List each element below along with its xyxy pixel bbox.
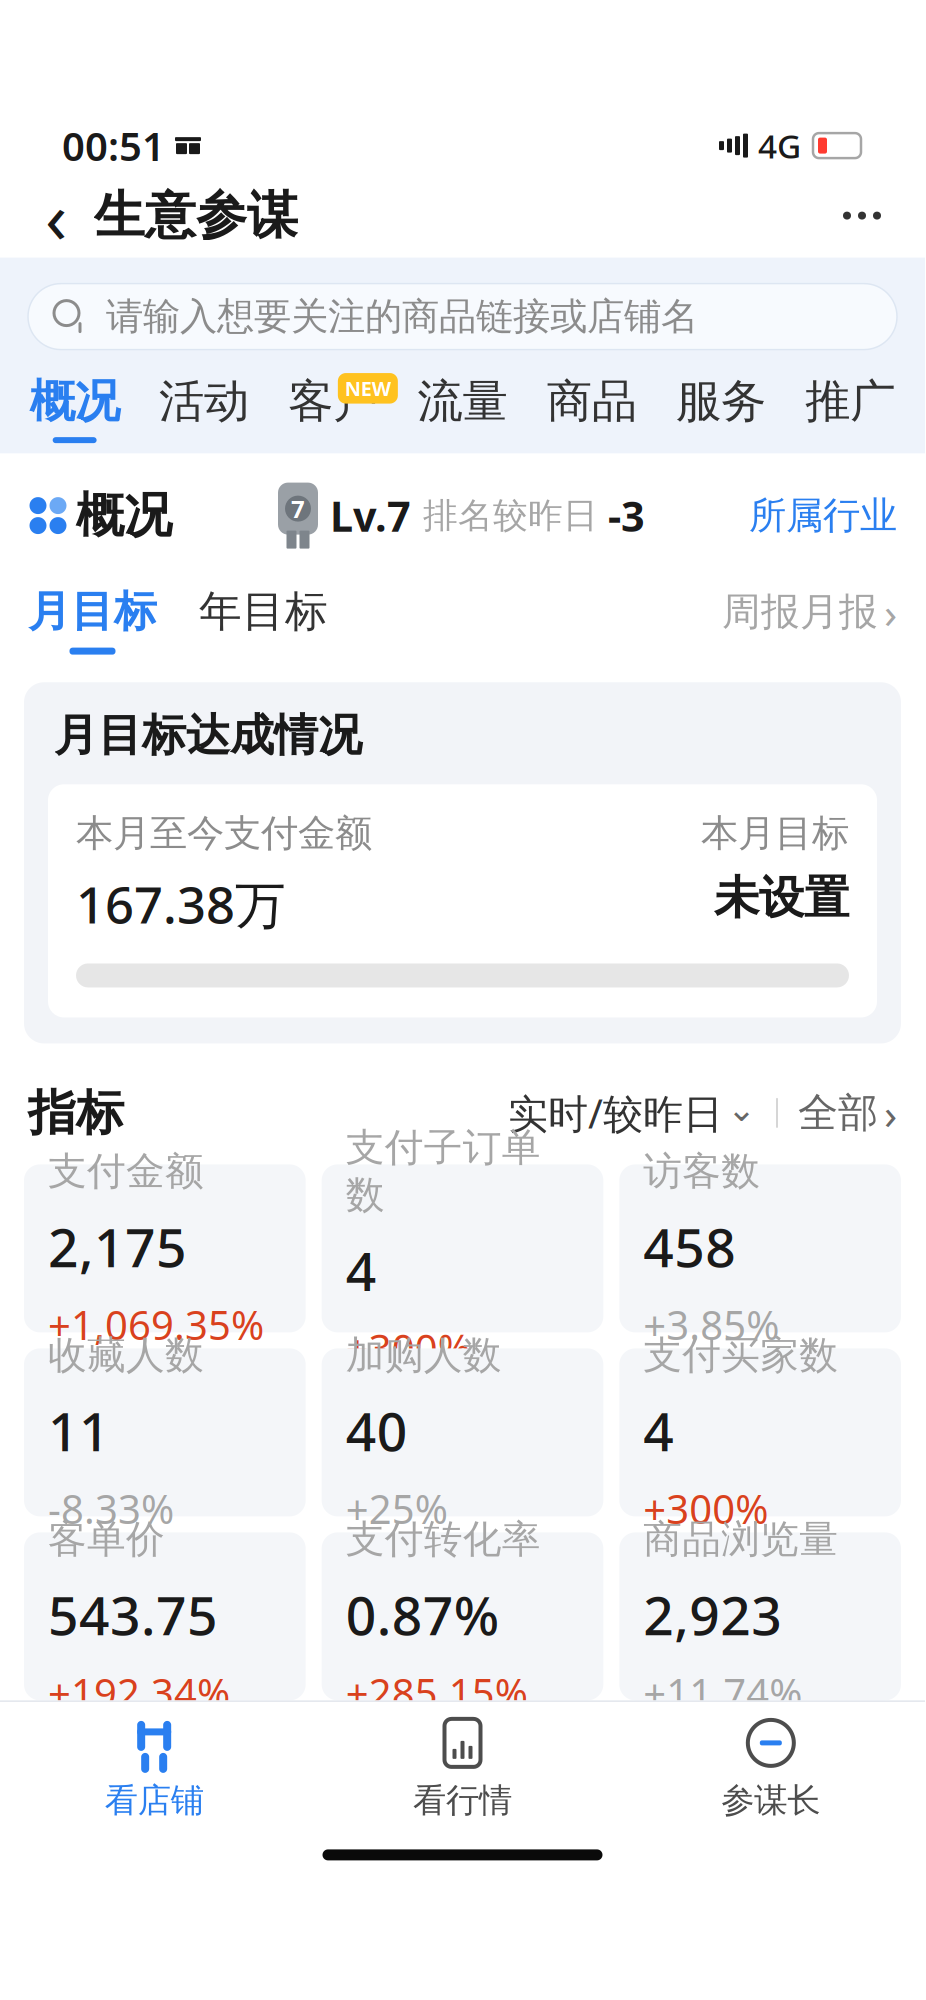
staticText: 支付子订单数 [346,1124,541,1219]
staticText: NEW [345,375,391,402]
staticText: 服务 [676,373,766,429]
staticText: +3.85% [643,1298,779,1351]
staticText: 2,923 [643,1579,782,1650]
staticText: 所属行业 [749,493,897,539]
staticText: 生意参谋 [94,184,298,247]
button[interactable]: 支付转化率 [322,1532,603,1700]
staticText: 4 [643,1395,674,1466]
button[interactable]: 商品 [527,367,656,449]
button[interactable]: 全部 [798,1085,897,1141]
staticText: -3 [608,488,645,543]
staticText: 推广 [805,373,895,429]
staticText: 加购人数 [346,1332,502,1379]
staticText: +192.34% [48,1666,230,1719]
staticText: 流量 [417,373,507,429]
staticText: 商品 [547,373,637,429]
staticText: 月目标 [28,585,157,638]
staticText: 未设置 [714,870,849,926]
staticText: +11.74% [643,1666,802,1719]
button[interactable]: 月目标 [28,585,157,655]
staticText: -8.33% [48,1482,174,1535]
staticText: 7 [291,493,305,525]
button[interactable]: 看店铺 [0,1702,308,1821]
staticText: 543.75 [48,1579,218,1650]
staticText: 本月至今支付金额 [76,810,372,856]
staticText: 实时/较昨日 [508,1086,723,1139]
button[interactable]: 请输入想要关注的商品链接或店铺名 [28,284,897,350]
button[interactable]: 流量 [398,367,527,449]
staticText: +300% [643,1482,768,1535]
staticText: 11 [48,1395,110,1466]
staticText: 参谋长 [721,1780,820,1821]
button[interactable]: More options [827,184,897,248]
staticText: 指标 [28,1083,124,1142]
staticText: 周报月报 [722,588,878,636]
staticText: 收藏人数 [48,1332,204,1379]
staticText: +1,069.35% [48,1298,264,1351]
button[interactable]: 客户 [269,367,398,450]
staticText: +25% [346,1482,448,1535]
staticText: › [884,584,897,640]
button[interactable]: 客单价 [24,1532,306,1700]
staticText: +285.15% [346,1666,528,1719]
button[interactable]: 活动 [139,367,269,449]
staticText: 概况 [30,373,120,429]
button[interactable]: 商品浏览量 [619,1532,901,1700]
button[interactable]: 收藏人数 [24,1348,306,1516]
staticText: 商品浏览量 [643,1516,838,1563]
button[interactable]: 支付子订单数 [322,1164,603,1332]
staticText: 0.87% [346,1579,499,1650]
staticText: 访客数 [643,1148,760,1195]
button[interactable]: 概况 [10,367,139,449]
button[interactable]: 周报月报 [722,584,897,656]
staticText: 支付金额 [48,1148,204,1195]
staticText: Lv.7 [330,488,411,543]
staticText: ‹ [45,168,67,263]
staticText: 全部 [798,1088,878,1137]
button[interactable]: 实时/较昨日 [508,1086,756,1139]
button[interactable]: 加购人数 [322,1348,603,1516]
staticText: 00:51 [62,119,165,172]
button[interactable]: 推广 [786,367,915,449]
staticText: 客户 [288,373,378,429]
button[interactable]: 服务 [656,367,786,449]
staticText: 支付转化率 [346,1516,541,1563]
staticText: 2,175 [48,1211,187,1282]
button[interactable]: Back [28,184,84,248]
button[interactable]: 看行情 [308,1702,617,1821]
staticText: 本月目标 [701,810,849,856]
button[interactable]: 支付买家数 [619,1348,901,1516]
staticText: 请输入想要关注的商品链接或店铺名 [106,294,698,340]
button[interactable]: 访客数 [619,1164,901,1332]
staticText: 看店铺 [105,1780,204,1821]
button[interactable]: 年目标 [157,585,328,655]
staticText: 167.38万 [76,870,286,937]
staticText: 看行情 [413,1780,512,1821]
staticText: 排名较昨日 [423,494,598,537]
button[interactable]: 支付金额 [24,1164,306,1332]
staticText: 活动 [159,373,249,429]
staticText: 4G [758,123,801,168]
staticText: 年目标 [199,585,328,638]
button[interactable]: 所属行业 [749,485,897,547]
staticText: 4 [346,1235,377,1306]
staticText: › [884,1085,897,1141]
staticText: 概况 [76,486,172,545]
button[interactable]: 参谋长 [617,1702,925,1821]
staticText: ⌄ [727,1089,756,1128]
staticText: 月目标达成情况 [54,708,362,762]
staticText: 支付买家数 [643,1332,838,1379]
staticText: 40 [346,1395,408,1466]
staticText: 458 [643,1211,736,1282]
staticText: 客单价 [48,1516,165,1563]
staticText: +300% [346,1322,471,1375]
